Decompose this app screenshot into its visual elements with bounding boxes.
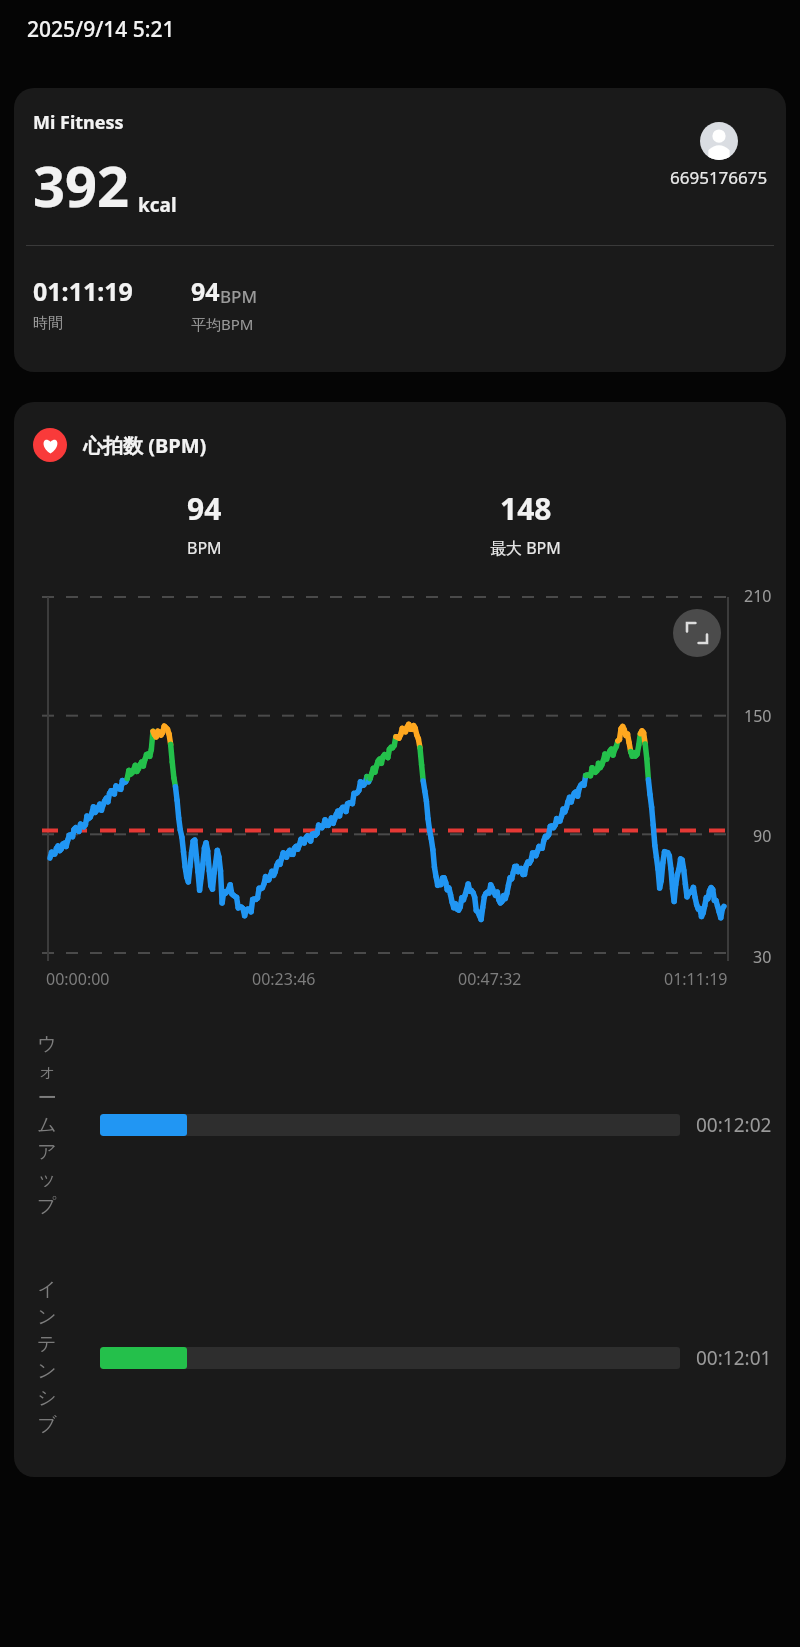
staticText: 2025/9/14 5:21 xyxy=(27,15,175,44)
staticText: 210 xyxy=(744,585,772,607)
staticText: BPM xyxy=(220,285,258,308)
staticText: 時間 xyxy=(33,314,63,333)
staticText: 00:12:02 xyxy=(696,1112,772,1138)
staticText: kcal xyxy=(138,192,177,218)
staticText: 00:47:32 xyxy=(458,968,522,990)
button[interactable]: Mi Fitness xyxy=(14,88,786,372)
staticText: 6695176675 xyxy=(670,166,768,189)
staticText: 00:00:00 xyxy=(46,968,110,990)
staticText: 94 xyxy=(187,488,222,529)
staticText: 平均BPM xyxy=(191,314,254,334)
staticText: 90 xyxy=(753,825,772,847)
staticText: 心拍数 (BPM) xyxy=(83,432,207,459)
staticText: 00:23:46 xyxy=(252,968,316,990)
button[interactable]: 心拍数 (BPM) xyxy=(33,428,207,462)
staticText: 94 xyxy=(191,274,220,308)
staticText: ウォームアップ xyxy=(34,1032,60,1218)
staticText: 00:12:01 xyxy=(696,1345,772,1371)
staticText: 01:11:19 xyxy=(33,274,133,308)
staticText: 148 xyxy=(500,488,552,529)
staticText: Mi Fitness xyxy=(33,110,124,135)
button[interactable]: Profile xyxy=(700,122,738,160)
staticText: 01:11:19 xyxy=(664,968,728,990)
staticText: BPM xyxy=(187,537,222,559)
staticText: 392 xyxy=(33,147,130,223)
button[interactable]: Expand chart xyxy=(673,609,721,657)
staticText: 30 xyxy=(753,946,772,968)
staticText: 最大 BPM xyxy=(490,537,561,559)
staticText: 150 xyxy=(744,705,772,727)
staticText: インテンシブ xyxy=(34,1278,60,1437)
